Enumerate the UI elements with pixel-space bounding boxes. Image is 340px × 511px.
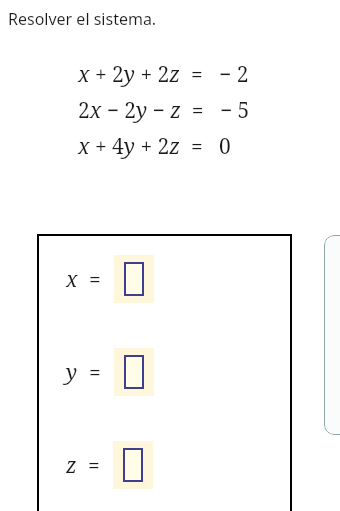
staticText: = [89,358,101,387]
staticText: x + 4y + 2z = 0 [78,132,231,161]
staticText: x + 2y + 2z = − 2 [78,60,249,89]
staticText: z [66,451,77,480]
button[interactable]: Answer input [114,348,154,396]
button[interactable]: Side panel [324,235,340,435]
button[interactable]: Answer input [113,441,153,489]
staticText: x [66,265,78,294]
button[interactable]: Answer input [114,255,154,303]
staticText: Resolver el sistema. [8,8,157,30]
staticText: y [66,358,78,387]
staticText: 2x − 2y − z = − 5 [78,96,250,125]
staticText: = [88,451,100,480]
staticText: = [89,265,101,294]
